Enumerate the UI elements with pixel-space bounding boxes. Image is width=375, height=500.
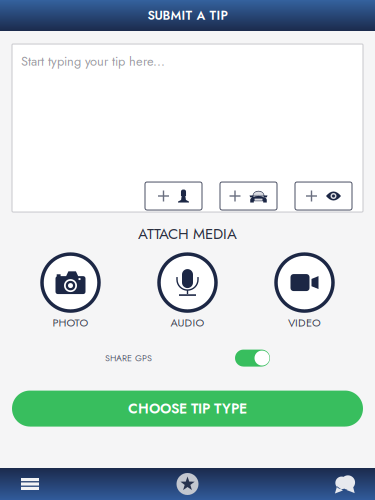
button[interactable]: Share GPS (235, 350, 270, 367)
button[interactable]: CHOOSE TIP TYPE (12, 391, 363, 427)
staticText: Start typing your tip here... (21, 52, 165, 70)
staticText: VIDEO (288, 315, 321, 331)
button[interactable]: Menu (0, 468, 60, 500)
button[interactable]: Add person (145, 182, 202, 210)
staticText: ATTACH MEDIA (138, 223, 237, 245)
staticText: PHOTO (52, 315, 88, 331)
staticText: SUBMIT A TIP (147, 6, 227, 24)
button[interactable]: Home (157, 468, 217, 500)
button[interactable]: AUDIO (157, 253, 217, 331)
button[interactable]: VIDEO (274, 253, 334, 331)
staticText: CHOOSE TIP TYPE (128, 398, 247, 419)
button[interactable]: Messages (315, 468, 375, 500)
staticText: SHARE GPS (105, 352, 152, 364)
button[interactable]: PHOTO (40, 253, 100, 331)
button[interactable]: Add vehicle (220, 182, 277, 210)
button[interactable]: Add witness (295, 182, 352, 210)
staticText: AUDIO (170, 315, 204, 331)
